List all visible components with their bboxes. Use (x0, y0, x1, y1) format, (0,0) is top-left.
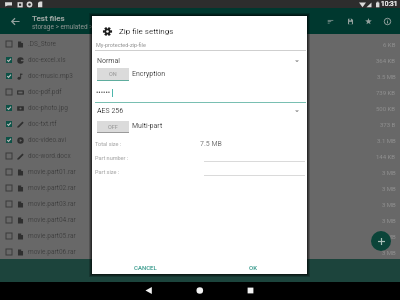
button[interactable]: Sort (321, 8, 340, 34)
staticText: 7.5 MB (200, 140, 222, 148)
button[interactable]: movie.part03.rar (0, 196, 400, 212)
button[interactable]: movie.part04.rar (0, 212, 400, 228)
button[interactable]: Normal (92, 54, 307, 68)
button[interactable]: Back (6, 8, 24, 34)
staticText: movie.part05.rar (28, 232, 76, 240)
staticText: movie.part01.rar (28, 168, 76, 176)
staticText: Part size : (95, 169, 120, 175)
staticText: 364 KB (376, 57, 396, 64)
staticText: 6 KB (383, 41, 396, 48)
button[interactable]: Favorites (359, 8, 378, 34)
button[interactable]: .DS_Store (0, 36, 400, 52)
staticText: 373 B (380, 121, 396, 128)
staticText: 144 KB (376, 153, 396, 160)
button[interactable]: Add (371, 231, 391, 251)
staticText: ON (109, 71, 117, 77)
staticText: Encryption (132, 70, 166, 78)
staticText: •••••• (96, 89, 111, 97)
staticText: My-protected-zip-file (96, 42, 146, 48)
button[interactable]: doc-txt.rtf (0, 116, 400, 132)
staticText: 3.5 MB (377, 73, 396, 80)
button[interactable]: doc-music.mp3 (0, 68, 400, 84)
staticText: 3 MB (382, 185, 396, 192)
button[interactable]: ON (97, 68, 129, 80)
staticText: movie.part03.rar (28, 200, 76, 208)
staticText: Multi-part (132, 122, 163, 130)
button[interactable]: CANCEL (130, 260, 161, 275)
staticText: Test files (32, 14, 65, 23)
staticText: 10:31 (381, 0, 398, 8)
staticText: movie.part06.rar (28, 248, 76, 256)
staticText: doc-video.avi (28, 136, 67, 144)
button[interactable]: OFF (97, 121, 129, 132)
button[interactable]: doc-word.docx (0, 148, 400, 164)
staticText: doc-pdf.pdf (28, 88, 62, 96)
button[interactable]: AES 256 (92, 104, 307, 118)
staticText: doc-word.docx (28, 152, 71, 160)
staticText: 739 KB (376, 89, 396, 96)
staticText: Part number : (95, 155, 129, 161)
staticText: .DS_Store (28, 40, 56, 48)
staticText: 3 MB (382, 233, 396, 240)
staticText: OFF (108, 124, 118, 130)
staticText: movie.part04.rar (28, 216, 76, 224)
button[interactable]: movie.part05.rar (0, 228, 400, 244)
button[interactable]: doc-excel.xls (0, 52, 400, 68)
button[interactable]: doc-photo.jpg (0, 100, 400, 116)
staticText: CANCEL (134, 264, 157, 271)
staticText: 3 MB (382, 169, 396, 176)
staticText: doc-txt.rtf (28, 120, 57, 128)
staticText: movie.part02.rar (28, 184, 76, 192)
staticText: 3.1 MB (377, 137, 396, 144)
staticText: Zip file settings (119, 27, 174, 36)
staticText: doc-music.mp3 (28, 72, 73, 80)
button[interactable]: Info (378, 8, 397, 34)
staticText: storage > emulated > (32, 23, 93, 31)
button[interactable]: doc-video.avi (0, 132, 400, 148)
staticText: 3 MB (382, 201, 396, 208)
button[interactable]: movie.part06.rar (0, 244, 400, 260)
button[interactable]: movie.part01.rar (0, 164, 400, 180)
button[interactable]: movie.part02.rar (0, 180, 400, 196)
staticText: doc-photo.jpg (28, 104, 68, 112)
button[interactable]: OK (245, 260, 261, 275)
button[interactable]: doc-pdf.pdf (0, 84, 400, 100)
button[interactable]: Save (341, 8, 360, 34)
staticText: OK (249, 264, 257, 271)
staticText: 500 KB (376, 105, 396, 112)
staticText: Normal (97, 57, 121, 65)
staticText: 3 MB (382, 217, 396, 224)
staticText: doc-excel.xls (28, 56, 66, 64)
staticText: Total size : (95, 141, 122, 147)
staticText: 3 MB (382, 249, 396, 256)
staticText: AES 256 (97, 107, 124, 115)
